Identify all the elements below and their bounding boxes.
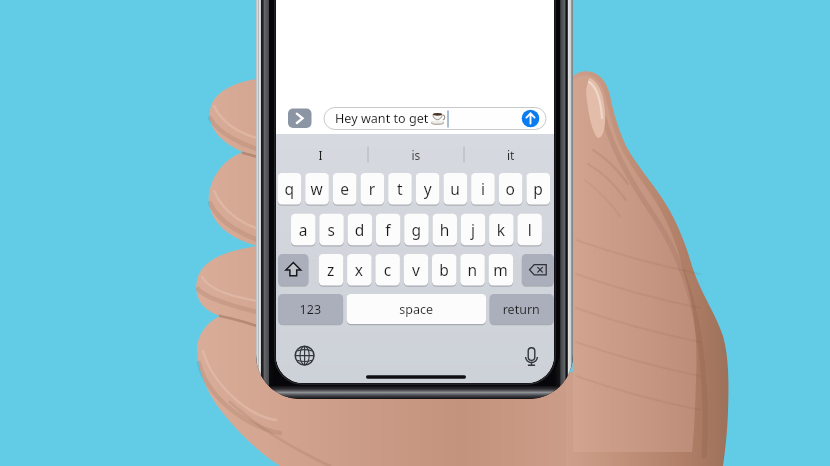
button[interactable]: l <box>517 214 542 246</box>
button[interactable]: Shift <box>278 254 308 286</box>
button[interactable]: Send <box>522 110 539 127</box>
button[interactable]: k <box>489 214 514 246</box>
button[interactable]: h <box>433 214 458 246</box>
button[interactable]: return <box>490 294 554 324</box>
button[interactable]: space <box>347 294 487 324</box>
button[interactable]: Show apps <box>288 109 312 129</box>
button[interactable]: it <box>464 138 554 164</box>
button[interactable]: i <box>471 173 495 205</box>
button[interactable]: d <box>348 214 373 246</box>
button[interactable]: c <box>375 254 400 286</box>
button[interactable]: f <box>376 214 401 246</box>
button[interactable]: 123 <box>278 294 343 324</box>
button[interactable]: t <box>388 173 412 205</box>
button[interactable]: y <box>416 173 440 205</box>
button[interactable]: g <box>404 214 429 246</box>
button[interactable]: is <box>368 138 464 164</box>
button[interactable]: o <box>499 173 523 205</box>
button[interactable]: Switch keyboard <box>293 344 316 367</box>
button[interactable]: Backspace <box>522 254 554 286</box>
button[interactable]: b <box>432 254 457 286</box>
button[interactable]: a <box>291 214 316 246</box>
button[interactable]: w <box>305 173 329 205</box>
button[interactable]: p <box>526 173 550 205</box>
button[interactable]: e <box>333 173 357 205</box>
button[interactable]: z <box>319 254 344 286</box>
button[interactable]: Dictation <box>519 343 542 367</box>
button[interactable]: I <box>276 138 368 164</box>
button[interactable]: Message input: Hey want to get <box>324 108 546 130</box>
button[interactable]: q <box>278 173 302 205</box>
button[interactable]: m <box>489 254 514 286</box>
button[interactable]: u <box>444 173 468 205</box>
button[interactable]: x <box>347 254 372 286</box>
button[interactable]: j <box>461 214 486 246</box>
button[interactable]: s <box>319 214 344 246</box>
button[interactable]: v <box>404 254 429 286</box>
button[interactable]: n <box>460 254 485 286</box>
button[interactable]: r <box>361 173 385 205</box>
